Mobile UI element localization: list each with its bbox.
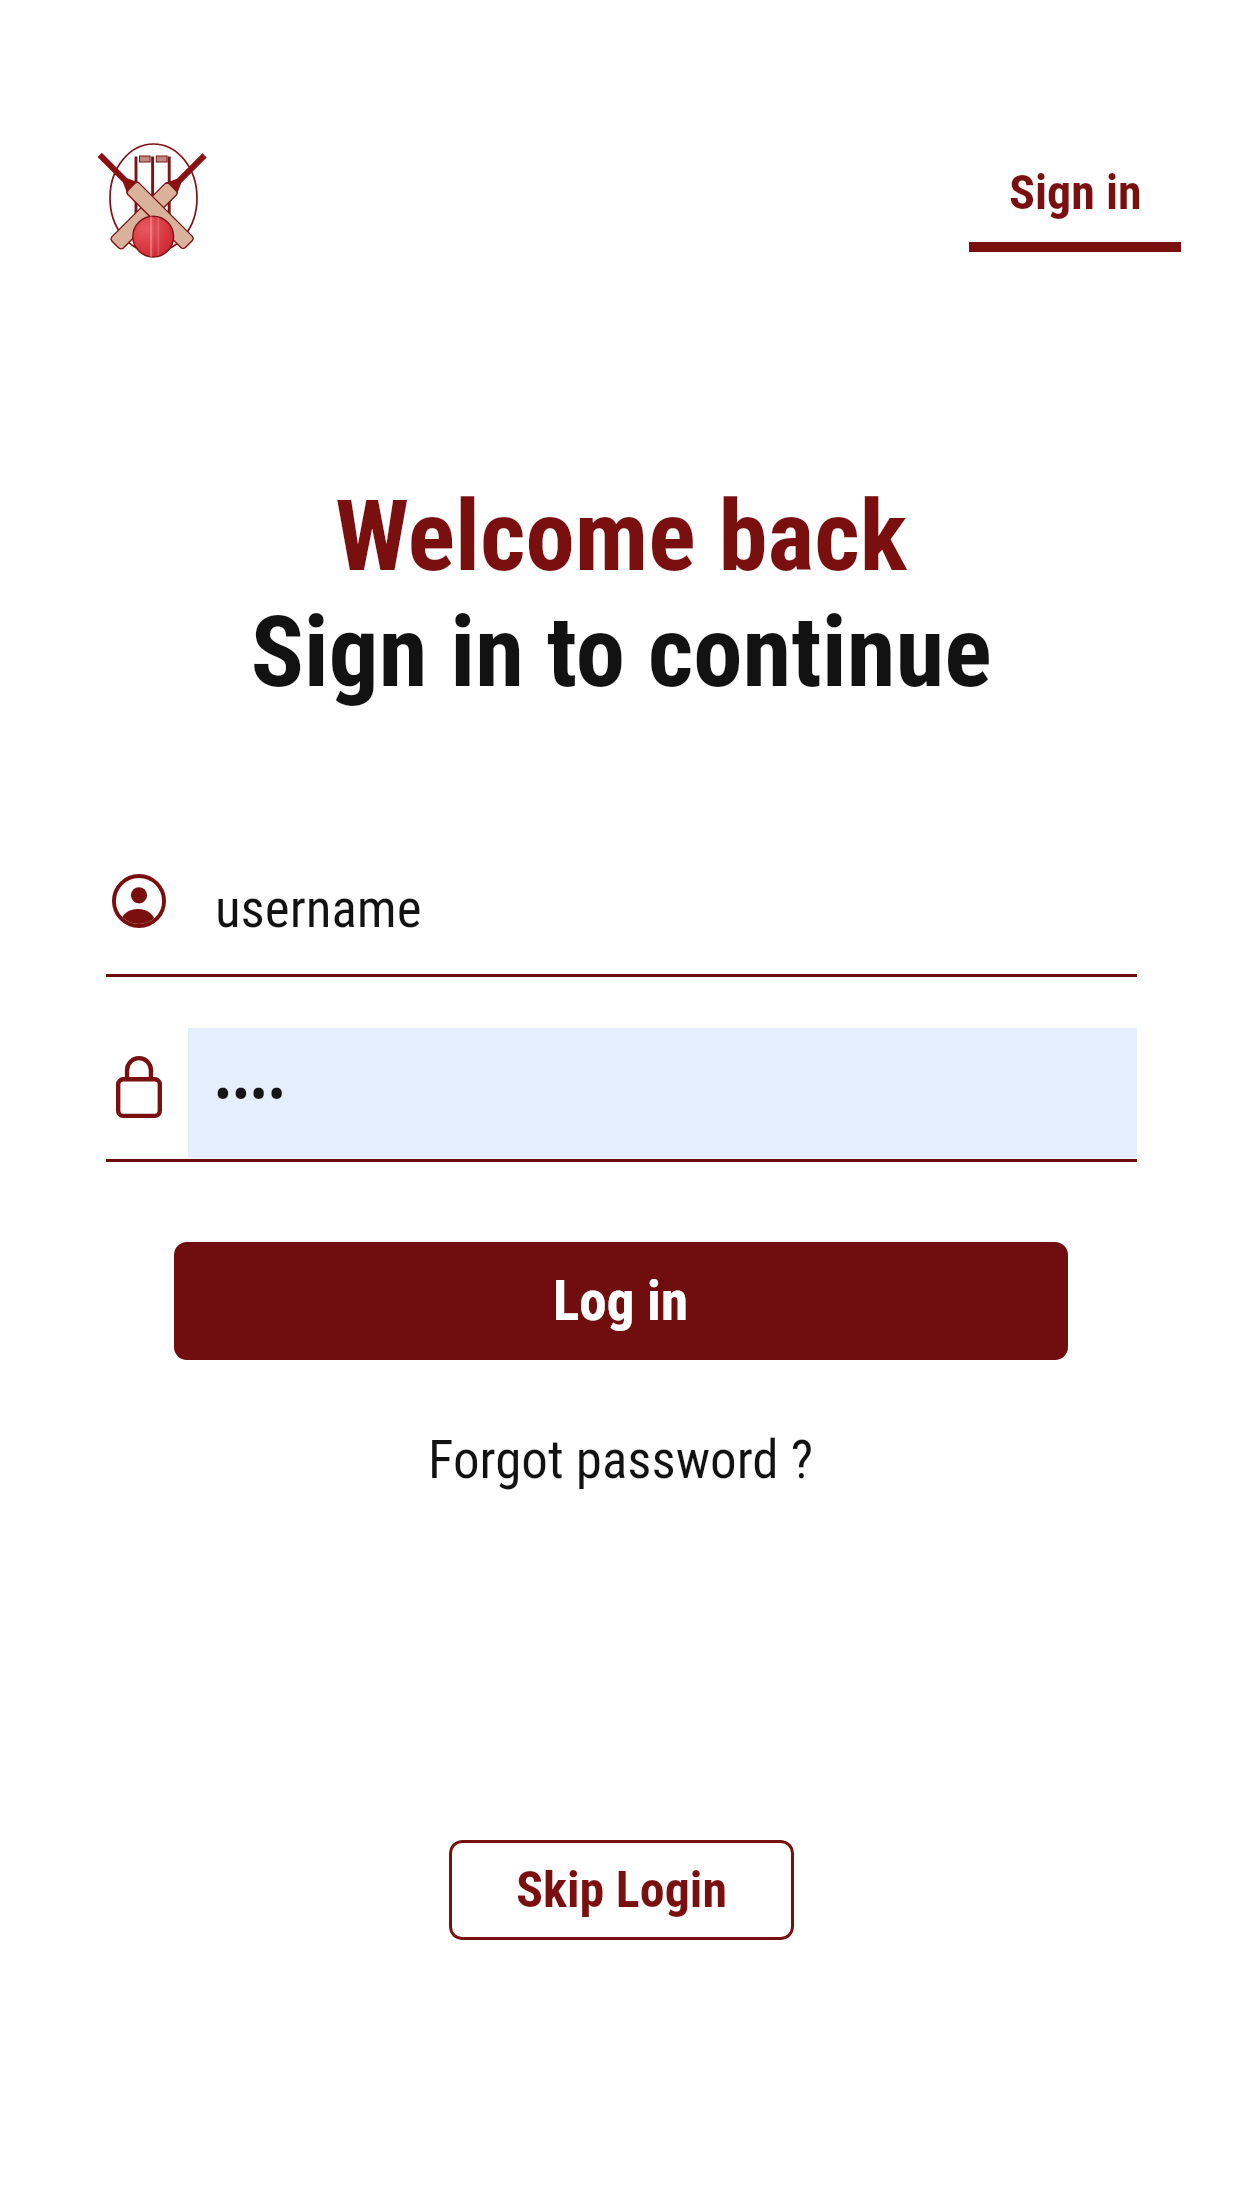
staticText: Skip Login: [516, 1861, 728, 1920]
button[interactable]: Username: [106, 862, 1137, 977]
button[interactable]: Forgot password ?: [410, 1419, 832, 1501]
button[interactable]: Skip Login: [449, 1840, 794, 1940]
button[interactable]: Sign in: [969, 164, 1181, 252]
other: Cricket app logo: [97, 142, 207, 258]
button[interactable]: Log in: [174, 1242, 1068, 1360]
staticText: username: [215, 878, 422, 940]
staticText: Log in: [553, 1269, 689, 1333]
staticText: ••••: [214, 1064, 286, 1126]
staticText: Welcome back: [0, 478, 1242, 594]
staticText: Forgot password ?: [428, 1429, 814, 1491]
other: Password: [116, 1056, 162, 1118]
other: Username: [112, 874, 166, 928]
staticText: Sign in to continue: [0, 594, 1242, 710]
button[interactable]: Password: [106, 1027, 1137, 1162]
staticText: Sign in: [1009, 164, 1142, 220]
